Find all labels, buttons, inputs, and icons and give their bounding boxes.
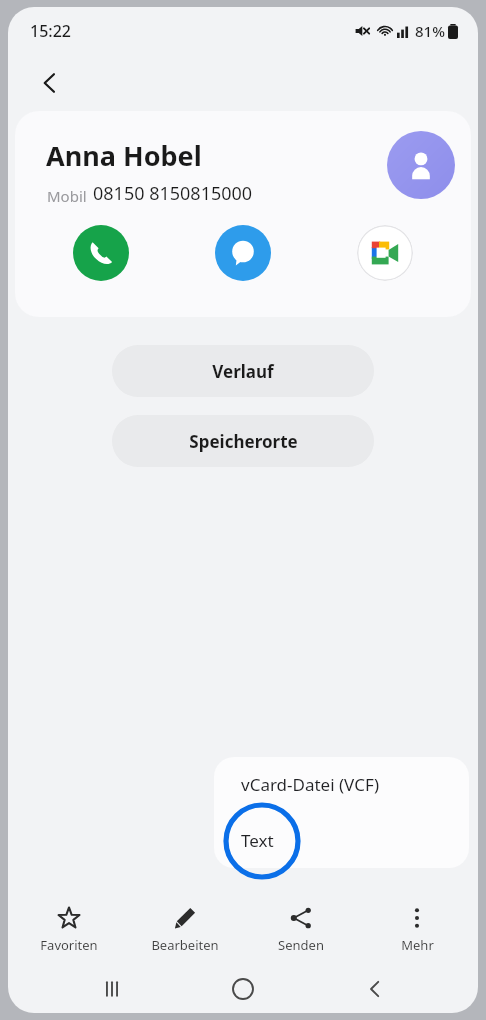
button[interactable]: Home bbox=[215, 965, 271, 1013]
button[interactable]: Senden bbox=[246, 895, 356, 965]
staticText: Verlauf bbox=[212, 360, 274, 383]
staticText: Speicherorte bbox=[189, 430, 298, 453]
button[interactable]: Bearbeiten bbox=[130, 895, 240, 965]
staticText: 81% bbox=[415, 21, 445, 41]
button[interactable]: Speicherorte bbox=[112, 415, 374, 467]
staticText: 08150 8150815000 bbox=[93, 181, 253, 206]
button[interactable]: Back bbox=[347, 965, 403, 1013]
staticText: 15:22 bbox=[30, 20, 71, 42]
button[interactable]: Contact photo bbox=[387, 131, 455, 199]
staticText: Anna Hobel bbox=[46, 137, 202, 174]
button[interactable]: Verlauf bbox=[112, 345, 374, 397]
button[interactable]: Text bbox=[214, 812, 469, 868]
button[interactable]: vCard-Datei (VCF) bbox=[214, 757, 469, 812]
staticText: Bearbeiten bbox=[151, 936, 219, 954]
staticText: Mehr bbox=[401, 936, 434, 954]
button[interactable]: Mehr bbox=[362, 895, 472, 965]
staticText: vCard-Datei (VCF) bbox=[241, 773, 380, 796]
button[interactable]: Video call bbox=[357, 225, 413, 281]
staticText: Text bbox=[241, 829, 274, 852]
staticText: Mobil bbox=[47, 186, 87, 206]
staticText: Favoriten bbox=[40, 936, 98, 954]
button[interactable]: Back bbox=[22, 55, 78, 111]
staticText: Senden bbox=[278, 936, 324, 954]
button[interactable]: Favoriten bbox=[14, 895, 124, 965]
button[interactable]: Call bbox=[73, 225, 129, 281]
button[interactable]: Recents bbox=[84, 965, 140, 1013]
button[interactable]: Message bbox=[215, 225, 271, 281]
